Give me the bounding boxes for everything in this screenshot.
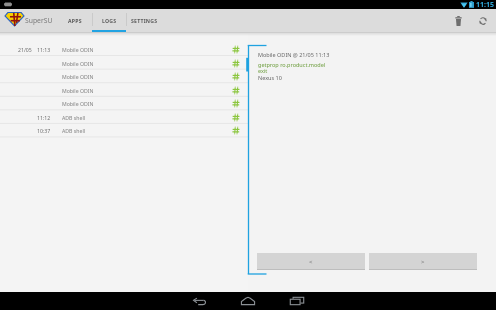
button[interactable]: Recent apps bbox=[285, 292, 309, 310]
button[interactable]: 11:12 bbox=[0, 110, 248, 124]
button[interactable]: > bbox=[369, 253, 477, 270]
staticText: Mobile ODIN bbox=[62, 60, 94, 67]
staticText: Mobile ODIN bbox=[62, 73, 94, 80]
staticText: 21/05 bbox=[18, 46, 32, 53]
staticText: exit bbox=[258, 67, 268, 74]
button[interactable]: < bbox=[257, 253, 365, 270]
staticText: APPS bbox=[68, 17, 82, 24]
staticText: 11:13 bbox=[37, 46, 51, 53]
button[interactable]: Mobile ODIN bbox=[0, 56, 248, 70]
staticText: SETTINGS bbox=[131, 17, 158, 24]
staticText: > bbox=[421, 258, 425, 266]
button[interactable]: Mobile ODIN bbox=[0, 69, 248, 83]
button[interactable]: Back bbox=[187, 292, 211, 310]
button[interactable]: LOGS bbox=[92, 9, 126, 32]
button[interactable]: SETTINGS bbox=[126, 9, 163, 32]
button[interactable]: 10:37 bbox=[0, 123, 248, 137]
staticText: SuperSU bbox=[25, 16, 53, 25]
staticText: ADB shell bbox=[62, 114, 86, 121]
staticText: LOGS bbox=[102, 17, 117, 24]
staticText: 11:15 bbox=[476, 0, 494, 9]
staticText: Mobile ODIN bbox=[62, 100, 94, 107]
staticText: Nexus 10 bbox=[258, 74, 282, 81]
staticText: 11:12 bbox=[37, 114, 51, 121]
staticText: Mobile ODIN bbox=[62, 87, 94, 94]
staticText: getprop ro.product.model bbox=[258, 61, 326, 68]
button[interactable]: APPS bbox=[58, 9, 92, 32]
button[interactable]: Refresh bbox=[469, 9, 496, 32]
button[interactable]: Delete logs bbox=[447, 9, 469, 32]
staticText: ADB shell bbox=[62, 127, 86, 134]
button[interactable]: Mobile ODIN bbox=[0, 83, 248, 97]
button[interactable]: 21/05 bbox=[0, 42, 248, 56]
button[interactable]: Mobile ODIN bbox=[0, 96, 248, 110]
staticText: Mobile ODIN @ 21/05 11:13 bbox=[258, 51, 330, 58]
staticText: 10:37 bbox=[37, 127, 51, 134]
staticText: < bbox=[309, 258, 313, 266]
staticText: Mobile ODIN bbox=[62, 46, 94, 53]
button[interactable]: Home bbox=[236, 292, 260, 310]
